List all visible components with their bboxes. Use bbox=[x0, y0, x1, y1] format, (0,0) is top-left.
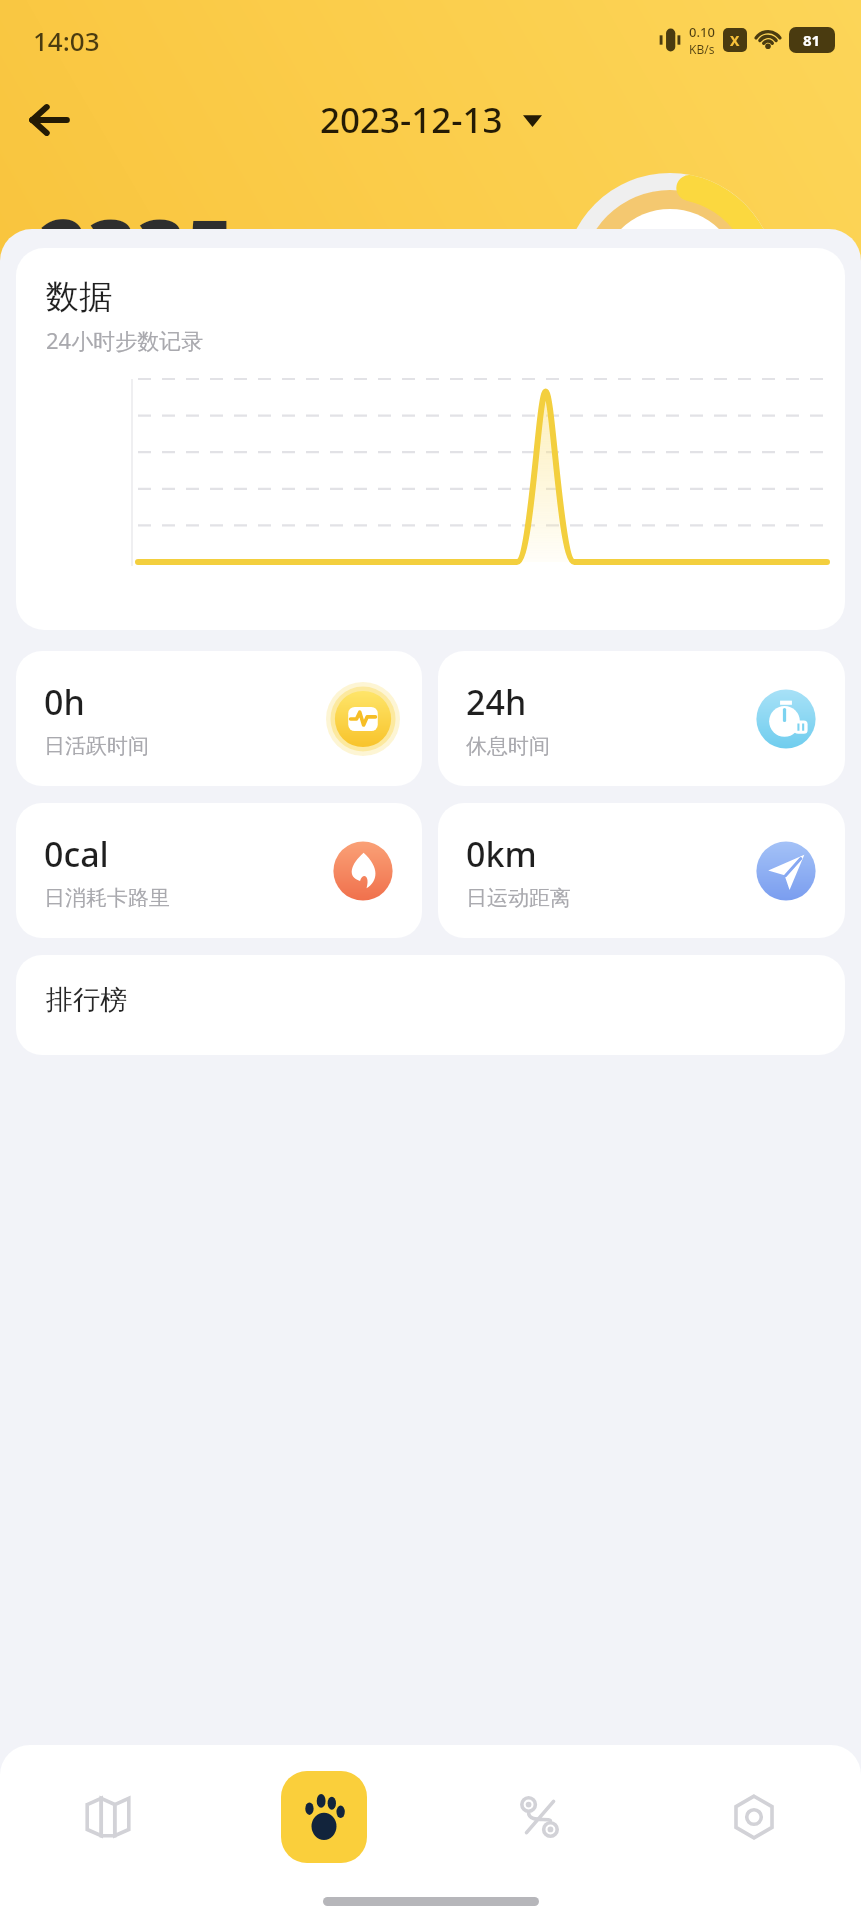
staticText: 数据 bbox=[46, 276, 112, 318]
staticText: 目标：5555步 bbox=[38, 319, 221, 359]
button[interactable]: Settings bbox=[646, 1767, 861, 1867]
button[interactable]: 2023-12-13 bbox=[312, 90, 550, 150]
staticText: 2023-12-13 bbox=[320, 96, 503, 144]
staticText: 休息时间 bbox=[466, 733, 550, 759]
button[interactable]: Back bbox=[18, 89, 80, 151]
staticText: KB/s bbox=[689, 41, 715, 57]
staticText: 24h bbox=[466, 679, 527, 725]
staticText: 日消耗卡路里 bbox=[44, 885, 170, 911]
staticText: 42% bbox=[629, 237, 711, 291]
staticText: 0km bbox=[466, 831, 537, 877]
staticText: 24小时步数记录 bbox=[46, 325, 204, 355]
staticText: 日活跃时间 bbox=[44, 733, 149, 759]
staticText: 日运动距离 bbox=[466, 885, 571, 911]
button[interactable]: Pet steps bbox=[216, 1767, 431, 1867]
button[interactable]: 排行榜 bbox=[16, 955, 845, 1055]
button[interactable]: 0h bbox=[16, 651, 422, 786]
staticText: 0.10 bbox=[689, 23, 715, 41]
staticText: 0cal bbox=[44, 831, 109, 877]
button[interactable]: Map bbox=[0, 1767, 216, 1867]
button[interactable]: Goal progress 42 percent bbox=[564, 173, 776, 385]
staticText: 81 bbox=[803, 30, 821, 50]
button[interactable]: 0km bbox=[438, 803, 845, 938]
staticText: 0h bbox=[44, 679, 85, 725]
button[interactable]: 24h bbox=[438, 651, 845, 786]
button[interactable]: 0cal bbox=[16, 803, 422, 938]
staticText: X bbox=[730, 31, 740, 50]
staticText: 2335 bbox=[38, 190, 235, 307]
staticText: 14:03 bbox=[33, 23, 100, 58]
button[interactable]: 数据 bbox=[16, 248, 845, 630]
button[interactable]: Routes bbox=[431, 1767, 646, 1867]
staticText: 排行榜 bbox=[46, 983, 127, 1017]
